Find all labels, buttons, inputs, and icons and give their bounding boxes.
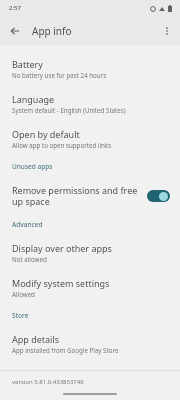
button[interactable]: Remove permissions and free up space — [0, 177, 180, 214]
staticText: Allow app to open supported links — [12, 141, 112, 149]
staticText: Battery — [12, 58, 43, 70]
staticText: version 5.81.0.433853746 — [12, 378, 84, 386]
button[interactable]: Language — [0, 86, 180, 121]
staticText: System default - English (United States) — [12, 106, 126, 114]
staticText: Advanced — [12, 220, 43, 229]
staticText: Allowed — [12, 290, 35, 298]
staticText: Remove permissions and free up space — [12, 184, 141, 207]
staticText: Language — [12, 93, 55, 105]
button[interactable]: Modify system settings — [0, 270, 180, 305]
staticText: Unused apps — [12, 162, 53, 171]
button[interactable]: More options — [156, 20, 177, 41]
button[interactable]: Battery — [0, 51, 180, 86]
staticText: App installed from Google Play Store — [12, 346, 119, 354]
button[interactable]: App details — [0, 326, 180, 361]
staticText: Modify system settings — [12, 277, 110, 289]
button[interactable]: Remove permissions toggle — [147, 190, 170, 202]
staticText: 2:57 — [9, 4, 21, 12]
button[interactable]: Open by default — [0, 121, 180, 156]
staticText: Not allowed — [12, 255, 47, 263]
staticText: Open by default — [12, 128, 80, 140]
staticText: App info — [32, 24, 72, 38]
button[interactable]: Display over other apps — [0, 235, 180, 270]
button[interactable]: Back — [4, 20, 25, 41]
staticText: App details — [12, 333, 60, 345]
staticText: Display over other apps — [12, 242, 112, 254]
staticText: Store — [12, 311, 29, 320]
staticText: No battery use for past 24 hours — [12, 71, 107, 79]
